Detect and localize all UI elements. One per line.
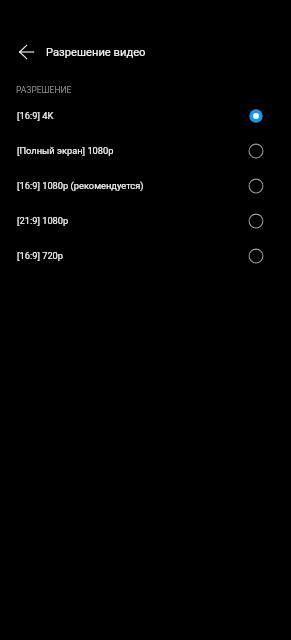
button[interactable]: [16:9] 1080p (рекомендуется)	[0, 168, 291, 203]
button[interactable]: [Полный экран] 1080p	[0, 133, 291, 168]
staticText: [21:9] 1080p	[17, 215, 69, 226]
button[interactable]: Back	[9, 34, 45, 70]
staticText: [16:9] 4K	[17, 110, 54, 121]
staticText: [Полный экран] 1080p	[17, 145, 114, 156]
staticText: РАЗРЕШЕНИЕ	[16, 85, 72, 95]
button[interactable]: [21:9] 1080p	[0, 203, 291, 238]
button[interactable]: [16:9] 4K	[0, 98, 291, 133]
staticText: [16:9] 1080p (рекомендуется)	[17, 180, 144, 191]
staticText: [16:9] 720p	[17, 250, 64, 261]
staticText: Разрешение видео	[46, 46, 146, 59]
button[interactable]: [16:9] 720p	[0, 238, 291, 273]
